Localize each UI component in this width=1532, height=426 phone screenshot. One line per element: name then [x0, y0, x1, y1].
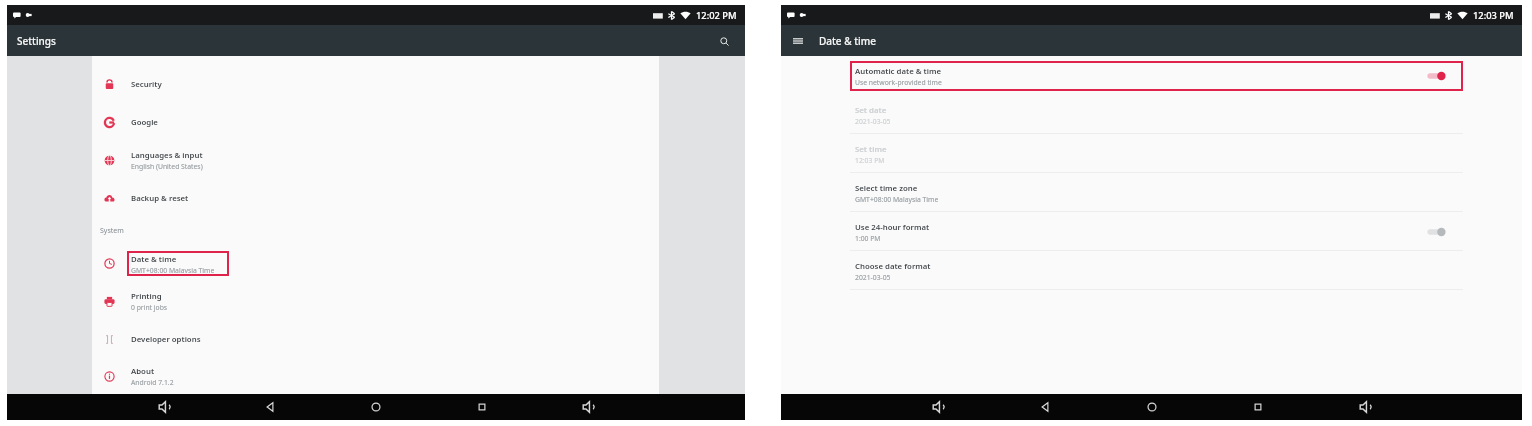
button[interactable]: Set date	[850, 95, 1463, 134]
button[interactable]: Home	[365, 396, 387, 418]
staticText: Developer options	[131, 334, 201, 345]
button[interactable]: Security	[92, 65, 659, 103]
button[interactable]: Search	[715, 32, 733, 50]
button[interactable]: Toggle on	[1427, 70, 1445, 82]
button[interactable]: Select time zone	[850, 173, 1463, 212]
staticText: Set time	[855, 144, 887, 155]
staticText: Printing	[131, 291, 162, 302]
staticText: Date & time	[131, 254, 177, 265]
staticText: Use 24-hour format	[855, 222, 930, 233]
staticText: English (United States)	[131, 162, 203, 171]
staticText: Automatic date & time	[855, 66, 941, 77]
button[interactable]: Set time	[850, 134, 1463, 173]
button[interactable]: Recents	[1247, 396, 1269, 418]
button[interactable]: Volume down	[153, 396, 175, 418]
staticText: Languages & input	[131, 150, 203, 161]
staticText: Set date	[855, 105, 887, 116]
button[interactable]: Navigation menu	[789, 32, 807, 50]
staticText: Security	[131, 79, 162, 90]
staticText: Backup & reset	[131, 193, 189, 204]
button[interactable]: Choose date format	[850, 251, 1463, 290]
staticText: System	[100, 226, 124, 236]
button[interactable]: Recents	[471, 396, 493, 418]
staticText: 0 print jobs	[131, 303, 168, 312]
staticText: GMT+08:00 Malaysia Time	[855, 195, 939, 204]
staticText: Settings	[17, 34, 56, 48]
button[interactable]: Date & time	[92, 244, 659, 282]
button[interactable]: Backup & reset	[92, 179, 659, 217]
staticText: Google	[131, 117, 158, 128]
staticText: 2021-03-05	[855, 117, 891, 126]
staticText: Choose date format	[855, 261, 931, 272]
staticText: 12:03 PM	[1473, 9, 1514, 22]
button[interactable]: Back	[1034, 396, 1056, 418]
button[interactable]: About	[92, 358, 659, 394]
staticText: 2021-03-05	[855, 273, 891, 282]
button[interactable]: Languages & input	[92, 141, 659, 179]
staticText: About	[131, 366, 155, 377]
staticText: Android 7.1.2	[131, 378, 174, 387]
button[interactable]: Use 24-hour format	[850, 212, 1463, 251]
staticText: Date & time	[819, 34, 876, 48]
staticText: 12:02 PM	[696, 9, 737, 22]
staticText: Select time zone	[855, 183, 918, 194]
button[interactable]: Printing	[92, 282, 659, 320]
button[interactable]: Volume up	[577, 396, 599, 418]
button[interactable]: Volume up	[1354, 396, 1376, 418]
button[interactable]: Toggle off	[1427, 226, 1445, 238]
button[interactable]: Google	[92, 103, 659, 141]
button[interactable]: Developer options	[92, 320, 659, 358]
staticText: Use network-provided time	[855, 78, 942, 87]
staticText: GMT+08:00 Malaysia Time	[131, 266, 215, 273]
button[interactable]: Volume down	[927, 396, 949, 418]
staticText: 12:03 PM	[855, 156, 885, 165]
button[interactable]: Home	[1141, 396, 1163, 418]
button[interactable]: Automatic date & time	[850, 56, 1463, 95]
staticText: 1:00 PM	[855, 234, 881, 243]
button[interactable]: Back	[259, 396, 281, 418]
